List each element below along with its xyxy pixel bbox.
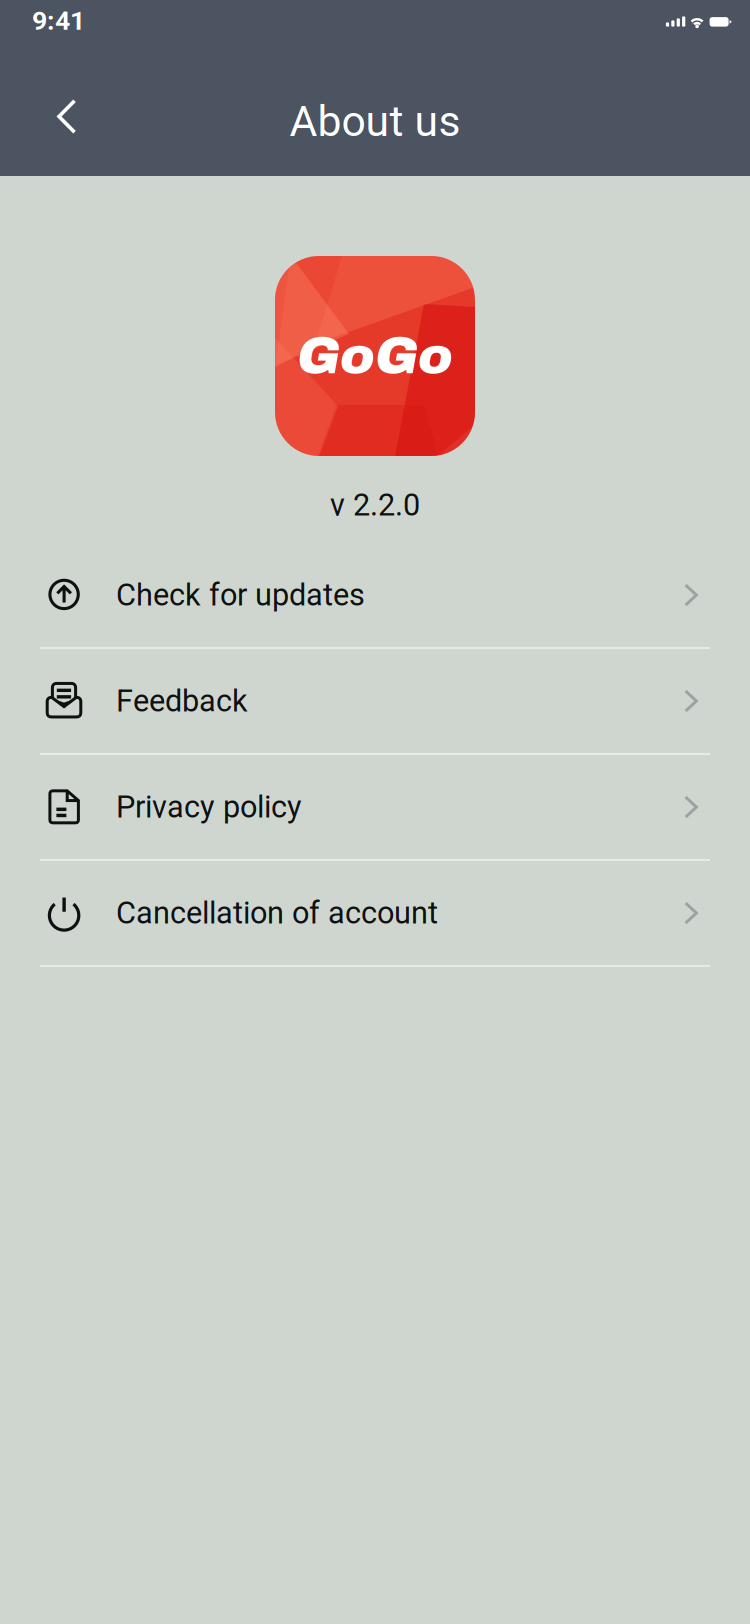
staticText: GoGo [297, 328, 453, 384]
button[interactable]: Back [0, 65, 106, 156]
staticText: Check for updates [116, 577, 365, 613]
staticText: Privacy policy [116, 789, 302, 825]
staticText: 9:41 [32, 5, 85, 36]
staticText: Cancellation of account [116, 895, 438, 931]
button[interactable]: Cancellation of account [0, 861, 750, 965]
staticText: v 2.2.0 [330, 487, 420, 523]
staticText: About us [289, 96, 460, 146]
button[interactable]: Feedback [0, 649, 750, 753]
button[interactable]: Check for updates [0, 543, 750, 647]
button[interactable]: Privacy policy [0, 755, 750, 859]
staticText: Feedback [116, 683, 248, 719]
